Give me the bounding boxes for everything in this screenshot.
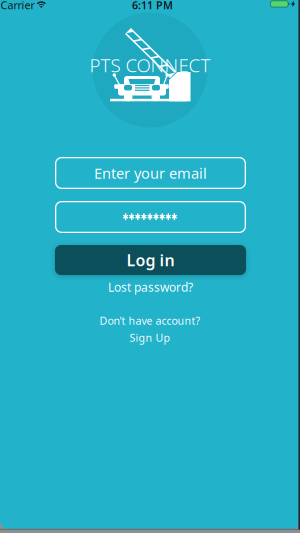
staticText: Carrier	[0, 0, 34, 12]
staticText: Enter your email	[94, 163, 207, 183]
button[interactable]: Password	[55, 201, 246, 233]
button[interactable]: Log in	[55, 245, 246, 275]
staticText: Lost password?	[108, 279, 193, 295]
staticText: PTS CONNECT	[89, 53, 210, 77]
staticText: 6:11 PM	[132, 0, 173, 12]
staticText: Sign Up	[129, 330, 170, 345]
button[interactable]: Sign Up	[129, 330, 170, 345]
button[interactable]: Lost password?	[108, 279, 193, 295]
staticText: Don't have account?	[99, 313, 200, 328]
button[interactable]: Enter your email	[55, 157, 246, 189]
staticText: Log in	[126, 249, 174, 271]
